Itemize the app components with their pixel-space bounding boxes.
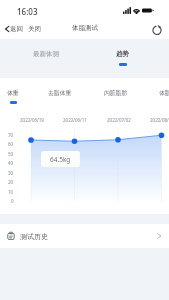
staticText: 2022/07/02 <box>107 117 131 123</box>
staticText: 体脂测试 <box>72 24 98 32</box>
staticText: 2022/08/05 <box>150 117 169 123</box>
staticText: 测试历史 <box>20 232 48 241</box>
button[interactable]: 体脂率 <box>154 84 169 106</box>
staticText: 内脏脂肪 <box>104 89 128 96</box>
staticText: 去脂体重 <box>48 89 72 96</box>
staticText: 50 <box>8 151 14 157</box>
button[interactable]: 最新体测 <box>25 45 67 69</box>
button[interactable]: 去脂体重 <box>46 84 74 106</box>
button[interactable]: 体重 <box>0 84 27 106</box>
staticText: 40 <box>8 160 14 166</box>
staticText: 10 <box>8 189 14 195</box>
staticText: 最新体测 <box>33 50 59 58</box>
staticText: 70 <box>8 132 14 138</box>
staticText: 体脂率 <box>159 89 169 96</box>
button[interactable]: 返回 <box>2 21 25 37</box>
staticText: 20 <box>8 179 14 185</box>
staticText: 16:03 <box>17 6 38 17</box>
button[interactable]: 内脏脂肪 <box>102 84 130 106</box>
staticText: 64.5kg <box>50 155 71 164</box>
staticText: 2022/06/11 <box>63 117 87 123</box>
staticText: 60 <box>8 141 14 147</box>
staticText: 0 <box>11 198 14 204</box>
staticText: 关闭 <box>28 25 41 33</box>
button[interactable]: 趋势 <box>107 45 138 69</box>
staticText: 2022/05/19 <box>20 117 44 123</box>
button[interactable]: 关闭 <box>26 21 43 37</box>
staticText: 趋势 <box>116 50 129 58</box>
staticText: 体重 <box>7 89 19 96</box>
button[interactable]: Refresh <box>148 21 165 38</box>
button[interactable]: 测试历史 <box>0 224 169 248</box>
staticText: 30 <box>8 170 14 176</box>
staticText: 返回 <box>10 25 23 33</box>
